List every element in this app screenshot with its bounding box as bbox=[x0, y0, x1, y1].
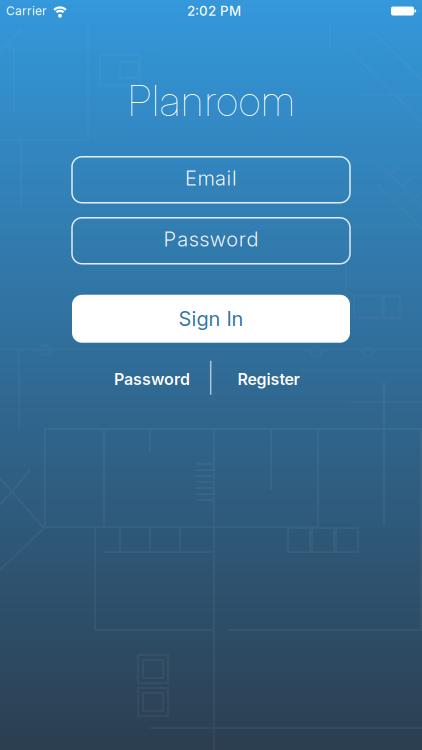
button[interactable]: Password bbox=[72, 218, 350, 264]
staticText: 2:02 PM bbox=[187, 3, 241, 19]
button[interactable]: Register bbox=[237, 368, 322, 387]
button[interactable]: Email bbox=[72, 157, 350, 203]
staticText: Password bbox=[164, 227, 258, 251]
staticText: Register bbox=[237, 370, 299, 389]
staticText: Password bbox=[114, 370, 190, 389]
staticText: Sign In bbox=[178, 307, 243, 331]
staticText: Email bbox=[185, 166, 237, 190]
staticText: Planroom bbox=[128, 76, 294, 125]
button[interactable]: Sign In bbox=[72, 295, 350, 343]
staticText: Carrier bbox=[6, 4, 47, 18]
button[interactable]: Password bbox=[95, 368, 190, 387]
